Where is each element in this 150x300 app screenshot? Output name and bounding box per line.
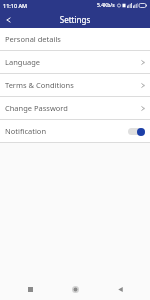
button[interactable]: Notification toggle, on: [128, 126, 145, 137]
button[interactable]: Notification: [0, 120, 150, 142]
staticText: Terms & Conditions: [5, 80, 141, 90]
button[interactable]: Personal details: [0, 28, 150, 50]
button[interactable]: Home: [67, 281, 83, 297]
staticText: Personal details: [5, 34, 145, 44]
staticText: Settings: [0, 14, 150, 25]
staticText: Language: [5, 57, 141, 67]
staticText: Notification: [5, 126, 128, 136]
button[interactable]: Recent apps: [22, 281, 38, 297]
staticText: Change Password: [5, 103, 141, 113]
staticText: 5.4Kb/s: [97, 2, 115, 9]
button[interactable]: Terms & Conditions: [0, 74, 150, 96]
button[interactable]: Change Password: [0, 97, 150, 119]
button[interactable]: Back: [112, 281, 128, 297]
staticText: 11:10 AM: [3, 2, 28, 9]
button[interactable]: Language: [0, 51, 150, 73]
button[interactable]: Back: [0, 12, 16, 28]
